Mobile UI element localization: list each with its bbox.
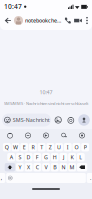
staticText: . (90, 174, 91, 182)
button[interactable]: O (72, 143, 80, 151)
staticText: A (10, 154, 13, 161)
button[interactable]: S (16, 153, 24, 161)
button[interactable]: D (25, 153, 32, 161)
button[interactable]: notebookche… (14, 13, 61, 28)
button[interactable]: T (38, 143, 45, 151)
button[interactable]: Delete (77, 163, 87, 171)
staticText: 10:47 (39, 89, 52, 96)
staticText: F (36, 154, 39, 161)
staticText: P (84, 144, 87, 151)
staticText: U (57, 144, 61, 151)
staticText: O (74, 144, 78, 151)
button[interactable]: Keyboard tool (41, 130, 51, 141)
button[interactable]: Video call (73, 13, 83, 28)
button[interactable]: More options (83, 13, 91, 28)
staticText: L (79, 154, 82, 161)
button[interactable]: Space (6, 173, 86, 183)
button[interactable]: J (59, 153, 67, 161)
button[interactable]: Z (46, 143, 54, 151)
button[interactable]: W (12, 143, 19, 151)
staticText: M (70, 164, 75, 171)
button[interactable]: Shift (5, 163, 15, 171)
button[interactable]: R (29, 143, 37, 151)
button[interactable]: Y (16, 163, 24, 171)
button[interactable]: L (77, 153, 85, 161)
staticText: V (44, 164, 47, 171)
staticText: Q (5, 144, 9, 151)
button[interactable]: Keyboard tool (5, 130, 15, 141)
staticText: Z (49, 144, 52, 151)
staticText: D (27, 154, 31, 161)
staticText: K (71, 154, 74, 161)
staticText: Y (18, 164, 21, 171)
button[interactable]: F (33, 153, 41, 161)
button[interactable]: H (51, 153, 59, 161)
staticText: SMS/MMS · Nachrichten sind nicht verschl… (4, 101, 88, 106)
staticText: S (18, 154, 21, 161)
button[interactable]: . (87, 173, 92, 183)
staticText: SMS-Nachricht (13, 116, 50, 124)
button[interactable]: P (81, 143, 89, 151)
staticText: E (23, 144, 26, 151)
staticText: I (67, 144, 69, 151)
staticText: X (27, 164, 30, 171)
button[interactable]: M (68, 163, 76, 171)
staticText: B (53, 164, 56, 171)
button[interactable]: Attach image (53, 113, 64, 126)
staticText: C (36, 164, 39, 171)
button[interactable]: U (55, 143, 63, 151)
button[interactable]: K (68, 153, 76, 161)
button[interactable]: V (42, 163, 50, 171)
staticText: notebookche… (25, 17, 61, 24)
staticText: T (40, 144, 43, 151)
button[interactable]: , (0, 173, 5, 183)
button[interactable]: B (51, 163, 59, 171)
button[interactable]: Record voice message (78, 113, 90, 126)
button[interactable]: Keyboard tool (59, 130, 69, 141)
button[interactable]: Call (63, 13, 73, 28)
staticText: G (44, 154, 48, 161)
button[interactable]: Camera (65, 113, 76, 126)
button[interactable]: X (25, 163, 32, 171)
staticText: R (31, 144, 34, 151)
staticText: H (53, 154, 57, 161)
button[interactable]: N (59, 163, 67, 171)
button[interactable]: C (33, 163, 41, 171)
staticText: W (13, 144, 18, 151)
button[interactable]: G (42, 153, 50, 161)
button[interactable]: Keyboard tool (77, 130, 87, 141)
button[interactable]: Q (3, 143, 11, 151)
staticText: 10:47 (4, 2, 22, 11)
button[interactable]: A (7, 153, 15, 161)
staticText: , (1, 174, 2, 182)
button[interactable]: Keyboard tool (23, 130, 33, 141)
staticText: N (61, 164, 65, 171)
staticText: J (63, 154, 64, 161)
button[interactable]: Back (1, 13, 14, 28)
button[interactable]: SMS-Nachricht (2, 113, 51, 126)
button[interactable]: I (64, 143, 72, 151)
button[interactable]: E (20, 143, 28, 151)
